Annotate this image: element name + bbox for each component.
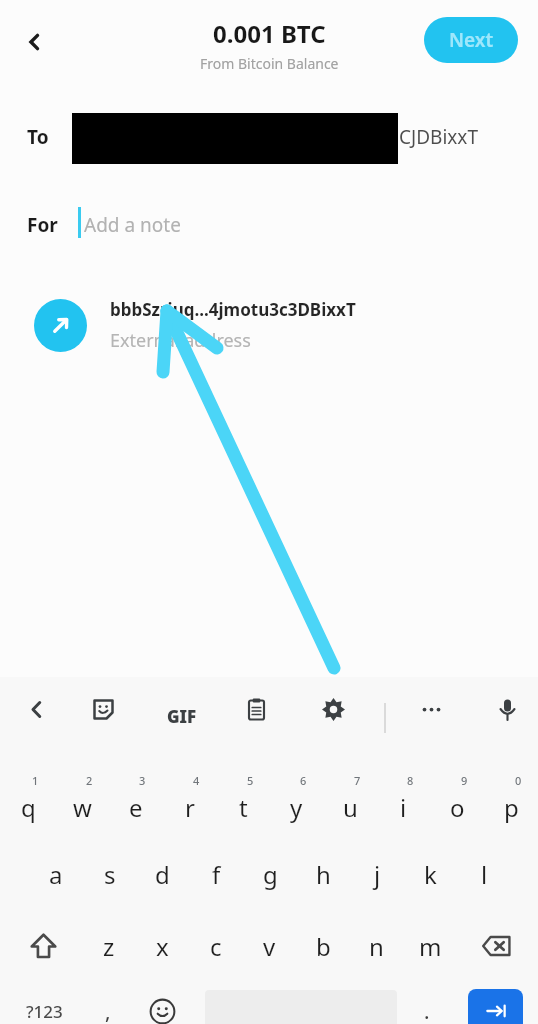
staticText: g (263, 858, 278, 891)
button[interactable]: c (189, 915, 242, 977)
button[interactable]: s (83, 843, 136, 905)
button[interactable]: Shift (13, 915, 73, 977)
staticText: p (504, 791, 519, 824)
staticText: External address (110, 328, 251, 353)
staticText: 3 (139, 773, 146, 788)
staticText: j (374, 858, 381, 891)
button[interactable]: b (297, 915, 350, 977)
staticText: z (103, 930, 115, 963)
staticText: 2 (86, 773, 93, 788)
button[interactable]: a (29, 843, 82, 905)
staticText: q (21, 791, 36, 824)
button[interactable]: n (350, 915, 403, 977)
button[interactable]: Emoji (138, 984, 186, 1024)
staticText: 9 (461, 773, 468, 788)
staticText: 4 (193, 773, 200, 788)
staticText: 7 (354, 773, 361, 788)
button[interactable]: More options (415, 693, 447, 725)
button[interactable]: d (136, 843, 189, 905)
staticText: 8 (407, 773, 414, 788)
button[interactable]: h (297, 843, 350, 905)
staticText: 1 (32, 773, 39, 788)
staticText: s (104, 858, 116, 891)
staticText: r (185, 791, 195, 824)
staticText: 6 (300, 773, 307, 788)
button[interactable]: 5 (217, 771, 270, 833)
button[interactable]: Settings (317, 693, 349, 725)
staticText: w (73, 791, 92, 824)
button[interactable]: 8 (377, 771, 430, 833)
staticText: Add a note (84, 212, 181, 238)
staticText: bbbSzrjuq...4jmotu3c3DBixxT (110, 298, 356, 321)
button[interactable]: 9 (431, 771, 484, 833)
button[interactable]: Stickers (87, 693, 119, 725)
button[interactable]: bbbSzrjuq...4jmotu3c3DBixxT (0, 284, 538, 366)
staticText: h (316, 858, 331, 891)
staticText: To (27, 124, 49, 150)
button[interactable]: j (351, 843, 404, 905)
staticText: ?123 (26, 1000, 63, 1023)
staticText: e (129, 791, 143, 824)
staticText: x (156, 930, 169, 963)
staticText: , (105, 998, 111, 1024)
button[interactable]: v (243, 915, 296, 977)
button[interactable]: 1 (2, 771, 55, 833)
button[interactable]: x (136, 915, 189, 977)
button[interactable]: g (244, 843, 297, 905)
staticText: For (27, 212, 58, 238)
staticText: l (481, 858, 488, 891)
staticText: Next (449, 27, 494, 53)
button[interactable]: . (405, 984, 449, 1024)
button[interactable]: 7 (324, 771, 377, 833)
staticText: f (212, 858, 221, 891)
staticText: n (369, 930, 384, 963)
button[interactable]: l (458, 843, 511, 905)
staticText: v (263, 930, 276, 963)
button[interactable]: m (404, 915, 457, 977)
button[interactable]: k (404, 843, 457, 905)
staticText: 0.001 BTC (213, 17, 326, 50)
button[interactable]: 2 (56, 771, 109, 833)
button[interactable]: f (190, 843, 243, 905)
button[interactable]: For (0, 198, 538, 252)
staticText: m (419, 930, 442, 963)
staticText: i (400, 791, 407, 824)
button[interactable]: 4 (163, 771, 216, 833)
button[interactable]: To (0, 105, 538, 171)
staticText: From Bitcoin Balance (200, 54, 339, 73)
button[interactable]: GIF (162, 701, 202, 731)
button[interactable]: ?123 (8, 984, 80, 1024)
staticText: t (239, 791, 248, 824)
staticText: . (424, 998, 430, 1024)
staticText: c (210, 930, 222, 963)
button[interactable]: Clipboard (240, 693, 272, 725)
button[interactable]: Backspace (466, 915, 526, 977)
staticText: u (343, 791, 358, 824)
staticText: y (290, 791, 303, 824)
button[interactable]: z (82, 915, 135, 977)
staticText: a (49, 858, 63, 891)
button[interactable]: 6 (270, 771, 323, 833)
button[interactable]: Enter (468, 989, 523, 1024)
button[interactable]: Back (8, 16, 60, 68)
staticText: b (316, 930, 331, 963)
button[interactable]: Previous (20, 693, 52, 725)
staticText: CJDBixxT (399, 124, 478, 150)
staticText: d (155, 858, 170, 891)
staticText: k (424, 858, 437, 891)
button[interactable]: Voice input (491, 693, 523, 725)
staticText: o (450, 791, 465, 824)
button[interactable]: 0 (485, 771, 538, 833)
staticText: GIF (167, 705, 197, 728)
staticText: 5 (247, 773, 254, 788)
staticText: 0 (515, 773, 522, 788)
button[interactable]: , (84, 984, 132, 1024)
button[interactable]: 3 (109, 771, 162, 833)
button[interactable]: Next (424, 17, 518, 63)
